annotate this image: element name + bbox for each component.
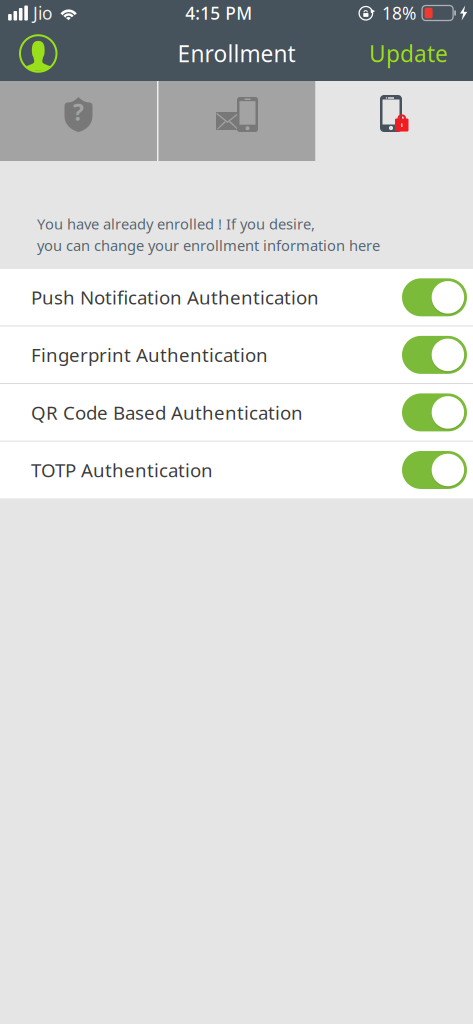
staticText: Jio xyxy=(33,1,52,24)
button[interactable]: Help xyxy=(0,81,157,161)
button[interactable]: Device enrollment xyxy=(315,81,473,161)
staticText: Fingerprint Authentication xyxy=(31,342,268,367)
staticText: 18% xyxy=(382,1,416,24)
staticText: TOTP Authentication xyxy=(31,458,213,482)
staticText: Push Notification Authentication xyxy=(31,285,319,310)
button[interactable]: TOTP Authentication xyxy=(0,442,473,498)
staticText: Enrollment xyxy=(177,38,295,68)
button[interactable]: Messaging xyxy=(158,81,315,161)
staticText: Update xyxy=(369,38,448,68)
button[interactable]: Fingerprint Authentication xyxy=(0,326,473,383)
button[interactable]: QR Code Based Authentication xyxy=(0,384,473,441)
staticText: you can change your enrollment informati… xyxy=(37,235,380,255)
staticText: 4:15 PM xyxy=(185,1,252,24)
staticText: QR Code Based Authentication xyxy=(31,400,303,425)
staticText: You have already enrolled ! If you desir… xyxy=(37,214,315,233)
staticText: ? xyxy=(73,97,84,127)
button[interactable]: Update xyxy=(355,26,473,81)
button[interactable]: Profile xyxy=(0,26,70,81)
button[interactable]: Push Notification Authentication xyxy=(0,269,473,326)
